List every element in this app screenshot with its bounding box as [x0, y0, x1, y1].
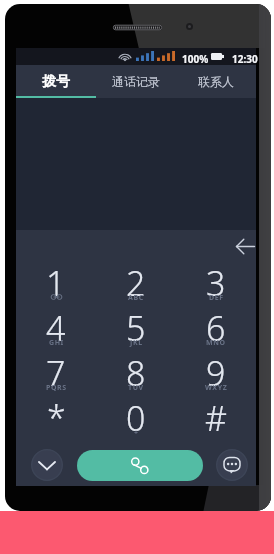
staticText: 3 — [206, 260, 226, 305]
staticText: 5 — [126, 305, 146, 350]
staticText: 2 — [126, 260, 146, 305]
staticText: PQRS — [46, 383, 67, 393]
staticText: 0 — [126, 395, 146, 440]
staticText: JKL — [130, 338, 143, 348]
staticText: 1 — [46, 260, 66, 305]
button[interactable]: Messages — [216, 449, 248, 481]
button[interactable]: 9 — [176, 350, 256, 395]
button[interactable]: 7 — [16, 350, 96, 395]
staticText: # — [205, 395, 227, 440]
button[interactable]: 3 — [176, 260, 256, 305]
button[interactable]: 6 — [176, 305, 256, 350]
button[interactable]: 5 — [96, 305, 176, 350]
staticText: 12:30 — [232, 52, 258, 66]
staticText: 100% — [182, 52, 209, 66]
button[interactable]: 8 — [96, 350, 176, 395]
button[interactable]: 联系人 — [176, 65, 256, 98]
staticText: + — [134, 428, 139, 438]
staticText: 6 — [206, 305, 226, 350]
button[interactable]: * — [16, 395, 96, 440]
button[interactable]: Hide keypad — [31, 449, 63, 481]
button[interactable]: 通话记录 — [96, 65, 176, 98]
staticText: 9 — [206, 350, 226, 395]
staticText: TUV — [128, 383, 144, 393]
staticText: DEF — [209, 293, 224, 303]
button[interactable]: 1 — [16, 260, 96, 305]
button[interactable]: 拨号 — [16, 65, 96, 98]
staticText: ABC — [128, 293, 144, 303]
staticText: 拨号 — [42, 73, 70, 91]
staticText: 通话记录 — [112, 74, 160, 89]
button[interactable]: 2 — [96, 260, 176, 305]
staticText: WXYZ — [205, 383, 228, 393]
button[interactable]: 0 — [96, 395, 176, 440]
button[interactable]: Call — [77, 450, 203, 481]
staticText: * — [47, 395, 66, 440]
button[interactable]: Backspace — [234, 234, 256, 256]
button[interactable]: 4 — [16, 305, 96, 350]
staticText: 7 — [46, 350, 66, 395]
button[interactable]: # — [176, 395, 256, 440]
staticText: 8 — [126, 350, 146, 395]
staticText: 联系人 — [198, 74, 234, 89]
staticText: 4 — [46, 305, 66, 350]
staticText: GHI — [49, 338, 64, 348]
staticText: MNO — [206, 338, 226, 348]
